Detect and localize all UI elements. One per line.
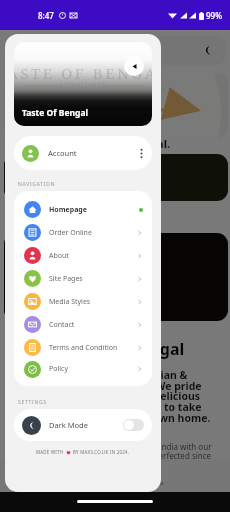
staticText: TASTE OF BENGAL <box>14 63 152 83</box>
staticText: NAVIGATION <box>18 181 56 188</box>
staticText: MADE WITH <box>36 449 64 455</box>
button[interactable]: Account <box>14 136 152 170</box>
staticText: We are an authentic Indian & <box>35 368 188 382</box>
staticText: BY MAXS.CO.UK IN 2024. <box>73 449 130 455</box>
button[interactable]: Site Pages <box>14 267 152 290</box>
staticText: Order Online <box>49 228 92 238</box>
button[interactable]: Homepage <box>14 198 152 221</box>
staticText: Located in the heart of <box>14 144 140 159</box>
staticText: Policy <box>49 364 69 374</box>
button[interactable]: Back <box>124 56 144 76</box>
staticText: Terms and Condition <box>49 343 118 353</box>
button[interactable]: Media Styles <box>14 290 152 313</box>
staticText: Media <box>146 479 164 487</box>
staticText: Taste Of Bengal <box>60 338 185 360</box>
staticText: 8:47 <box>38 10 54 21</box>
staticText: Account <box>48 148 77 158</box>
staticText: About <box>49 251 69 261</box>
staticText: authentic recipes, perfected since <box>85 450 212 461</box>
staticText: Contact <box>49 320 75 330</box>
staticText: Homepage <box>49 205 87 215</box>
staticText: Dark Mode <box>49 420 88 430</box>
button[interactable]: Order Online <box>14 221 152 244</box>
staticText: Media Styles <box>49 297 91 307</box>
staticText: and enjoy in their own home. <box>58 411 211 425</box>
button[interactable]: Policy <box>14 359 152 379</box>
button[interactable]: Contact <box>14 313 152 336</box>
staticText: ESTABLISHED <box>60 82 107 89</box>
staticText: SETTINGS <box>18 399 47 406</box>
button[interactable]: About <box>14 244 152 267</box>
staticText: 99% <box>206 10 222 21</box>
staticText: food for everyone to take <box>68 400 202 414</box>
button[interactable]: Dark Mode <box>14 409 152 441</box>
staticText: We bring the taste of India with our <box>78 441 212 452</box>
staticText: Bangladeshi kitchen. We pride <box>43 379 202 393</box>
staticText: Welcome to Taste Of Bengal. <box>14 136 171 151</box>
staticText: Taste Of Bengal <box>22 107 89 119</box>
staticText: Site Pages <box>49 274 83 284</box>
staticText: ourselves on serving delicious <box>43 389 201 403</box>
button[interactable]: Terms and Condition <box>14 336 152 359</box>
